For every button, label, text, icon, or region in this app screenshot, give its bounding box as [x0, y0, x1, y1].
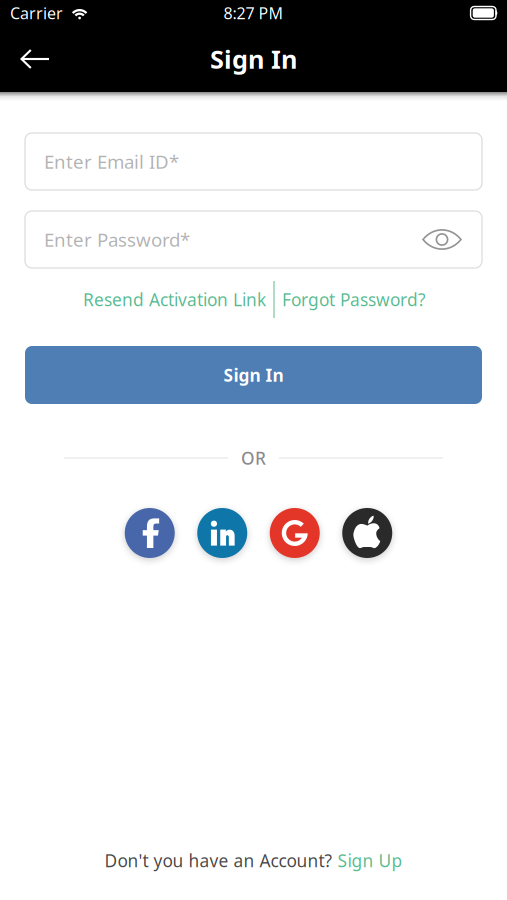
staticText: 8:27 PM	[223, 2, 283, 24]
staticText: OR	[241, 446, 266, 469]
staticText: Sign Up	[337, 849, 402, 872]
button[interactable]: Show password	[419, 220, 465, 258]
staticText: Sign In	[210, 42, 297, 76]
button[interactable]: Sign Up	[337, 849, 402, 872]
button[interactable]: Sign in with Google	[270, 508, 320, 558]
staticText: Resend Activation Link	[83, 288, 266, 311]
button[interactable]: Back	[11, 37, 59, 81]
button[interactable]: Sign in with LinkedIn	[197, 508, 247, 558]
button[interactable]: Sign In	[25, 346, 482, 404]
staticText: Sign In	[223, 363, 283, 386]
button[interactable]: Sign in with Apple	[342, 508, 392, 558]
staticText: Forgot Password?	[282, 288, 426, 311]
staticText: Enter Password*	[44, 227, 190, 252]
staticText: Enter Email ID*	[44, 149, 179, 174]
button[interactable]: Resend Activation Link	[83, 281, 266, 318]
staticText: Don't you have an Account?	[104, 849, 337, 872]
staticText: Carrier	[10, 2, 63, 24]
button[interactable]: Forgot Password?	[282, 281, 426, 318]
button[interactable]: Sign in with Facebook	[125, 508, 175, 558]
